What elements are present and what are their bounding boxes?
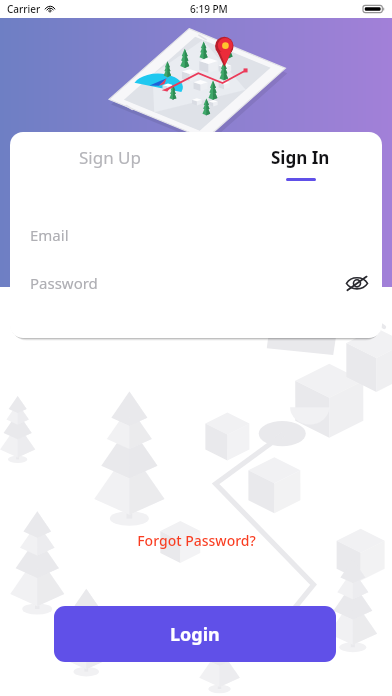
- staticText: Forgot Password?: [137, 531, 256, 550]
- staticText: Sign In: [271, 146, 330, 169]
- button[interactable]: Sign Up: [50, 146, 170, 190]
- staticText: Sign Up: [79, 146, 141, 169]
- button[interactable]: Login: [54, 606, 336, 662]
- button[interactable]: Show password: [334, 260, 380, 306]
- button[interactable]: Sign In: [240, 146, 360, 190]
- staticText: Email: [30, 225, 69, 245]
- button[interactable]: Forgot Password?: [127, 528, 266, 553]
- staticText: Login: [170, 622, 220, 647]
- button[interactable]: Password: [10, 260, 382, 306]
- staticText: Carrier: [7, 2, 41, 16]
- staticText: Password: [30, 273, 98, 293]
- button[interactable]: Email: [10, 212, 382, 258]
- staticText: 6:19 PM: [190, 2, 228, 16]
